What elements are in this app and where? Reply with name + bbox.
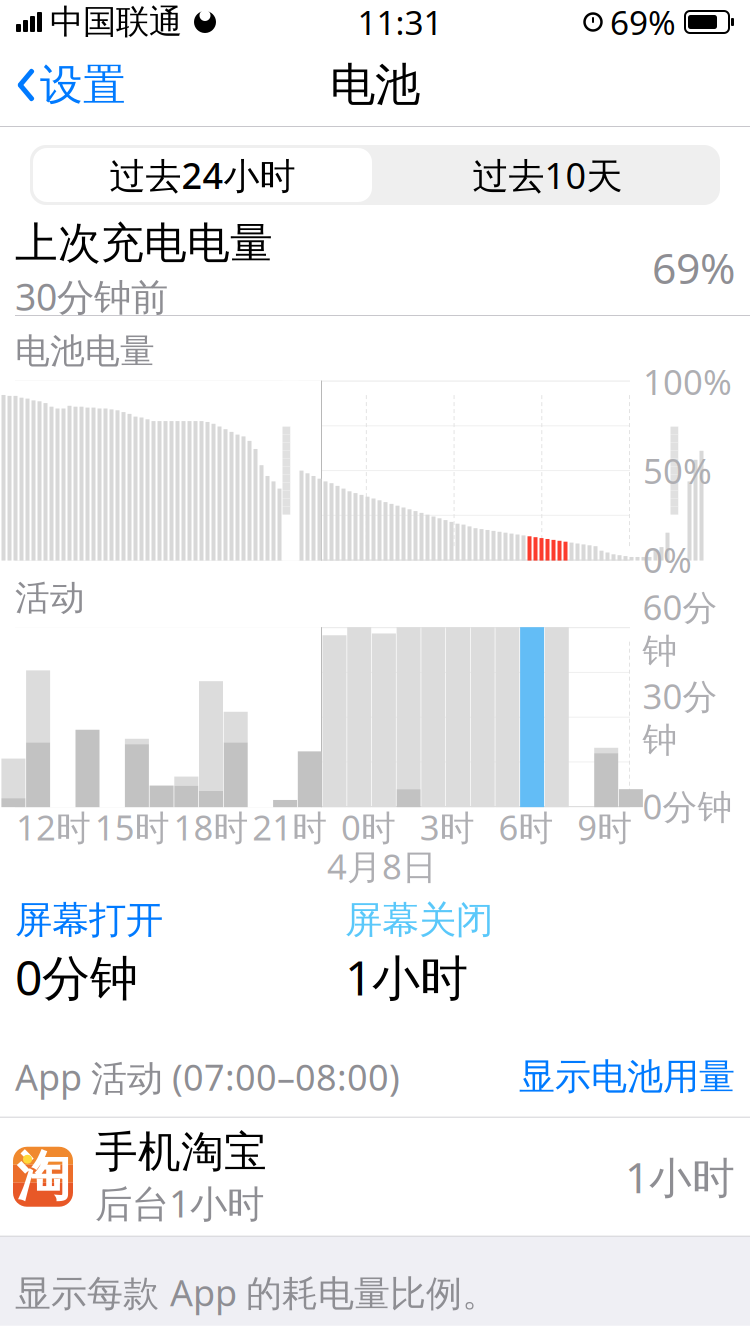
staticText: 显示每款 App 的耗电量比例。 (15, 1268, 498, 1316)
staticText: 0时 (341, 804, 396, 850)
staticText: 活动 (15, 577, 85, 619)
staticText: 18时 (173, 804, 248, 850)
staticText: 69% (652, 239, 735, 296)
staticText: 中国联通 (50, 1, 182, 42)
staticText: 显示电池用量 (519, 1055, 735, 1099)
staticText: 100% (643, 359, 732, 405)
staticText: 12时 (16, 804, 91, 850)
button[interactable]: 过去24小时 (30, 145, 375, 205)
staticText: 1小时 (345, 945, 468, 1009)
staticText: 15时 (95, 804, 170, 850)
staticText: 0分钟 (15, 945, 138, 1009)
staticText: 电池电量 (15, 330, 155, 373)
staticText: 电池 (330, 57, 420, 113)
staticText: 11:31 (357, 0, 442, 44)
staticText: 后台1小时 (95, 1178, 264, 1228)
staticText: 60分钟 (642, 584, 717, 672)
staticText: 1小时 (625, 1148, 735, 1205)
staticText: 屏幕打开 (15, 897, 163, 943)
staticText: 屏幕关闭 (345, 897, 493, 943)
staticText: 4月8日 (327, 843, 437, 889)
staticText: 21时 (252, 804, 327, 850)
staticText: 3时 (420, 804, 475, 850)
staticText: 30分钟前 (15, 271, 168, 321)
staticText: 9时 (577, 804, 632, 850)
staticText: 手机淘宝 (95, 1126, 267, 1178)
button[interactable]: 过去10天 (375, 145, 720, 205)
button[interactable]: 设置 (0, 51, 142, 119)
staticText: 过去10天 (472, 151, 622, 199)
button[interactable]: 显示电池用量 (519, 1055, 735, 1099)
staticText: 0% (643, 537, 692, 583)
staticText: 上次充电电量 (15, 217, 273, 269)
staticText: 30分钟 (642, 673, 717, 761)
staticText: 设置 (40, 59, 126, 111)
staticText: 6时 (498, 804, 553, 850)
staticText: 淘 (16, 1144, 69, 1209)
button[interactable]: 淘 (0, 1118, 750, 1236)
staticText: 0分钟 (642, 783, 732, 829)
staticText: App 活动 (07:00–08:00) (15, 1053, 400, 1101)
staticText: 69% (610, 0, 676, 44)
staticText: 50% (643, 448, 712, 494)
staticText: 过去24小时 (109, 151, 295, 199)
